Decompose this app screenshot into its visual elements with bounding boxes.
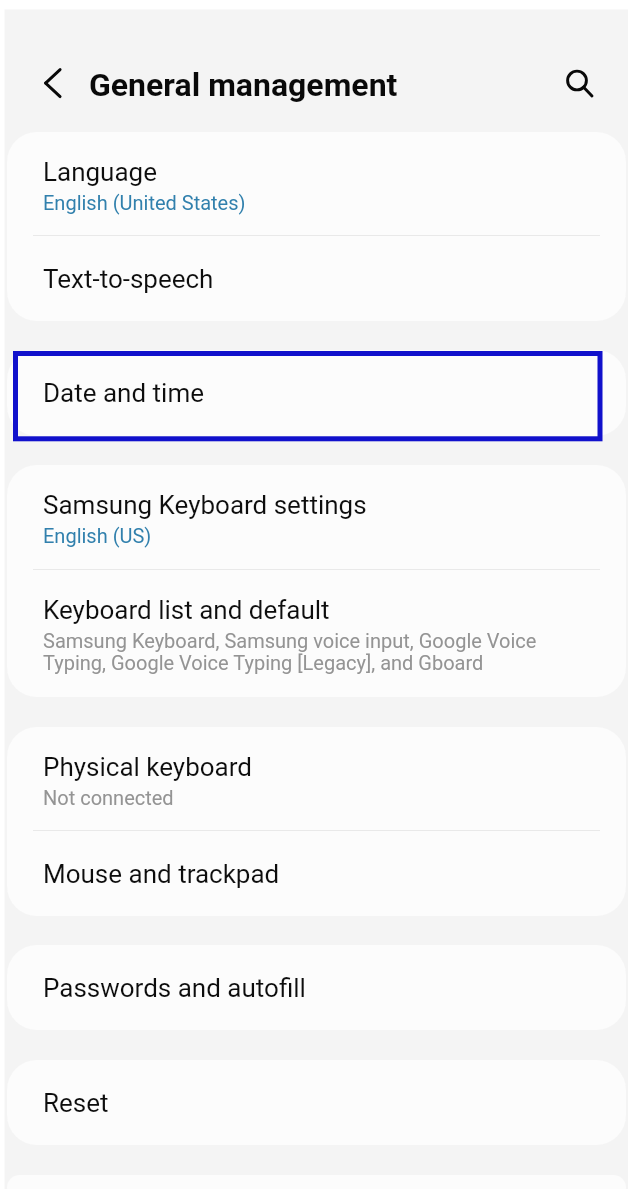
staticText: Keyboard list and default bbox=[43, 595, 330, 625]
button[interactable]: Reset bbox=[7, 1060, 626, 1145]
staticText: Reset bbox=[43, 1088, 109, 1118]
staticText: Samsung Keyboard settings bbox=[43, 490, 367, 520]
staticText: Passwords and autofill bbox=[43, 973, 306, 1003]
staticText: Mouse and trackpad bbox=[43, 859, 280, 889]
button[interactable]: Text-to-speech bbox=[7, 236, 626, 321]
staticText: Physical keyboard bbox=[43, 752, 252, 782]
staticText: Not connected bbox=[43, 786, 174, 809]
staticText: Samsung Keyboard, Samsung voice input, G… bbox=[43, 629, 598, 675]
staticText: English (United States) bbox=[43, 191, 246, 214]
button[interactable]: Mouse and trackpad bbox=[7, 831, 626, 916]
button[interactable]: Navigate up bbox=[29, 59, 77, 107]
button[interactable]: Passwords and autofill bbox=[7, 945, 626, 1030]
button[interactable]: Physical keyboard bbox=[7, 727, 626, 830]
button[interactable]: Date and time bbox=[7, 350, 626, 436]
staticText: Language bbox=[43, 157, 157, 187]
staticText: Date and time bbox=[43, 378, 204, 408]
button[interactable]: Language bbox=[7, 132, 626, 235]
button[interactable]: Search bbox=[553, 57, 601, 105]
staticText: General management bbox=[89, 66, 398, 104]
button[interactable]: Keyboard list and default bbox=[7, 570, 626, 697]
staticText: English (US) bbox=[43, 524, 152, 547]
button[interactable]: Samsung Keyboard settings bbox=[7, 465, 626, 569]
staticText: Text-to-speech bbox=[43, 264, 214, 294]
